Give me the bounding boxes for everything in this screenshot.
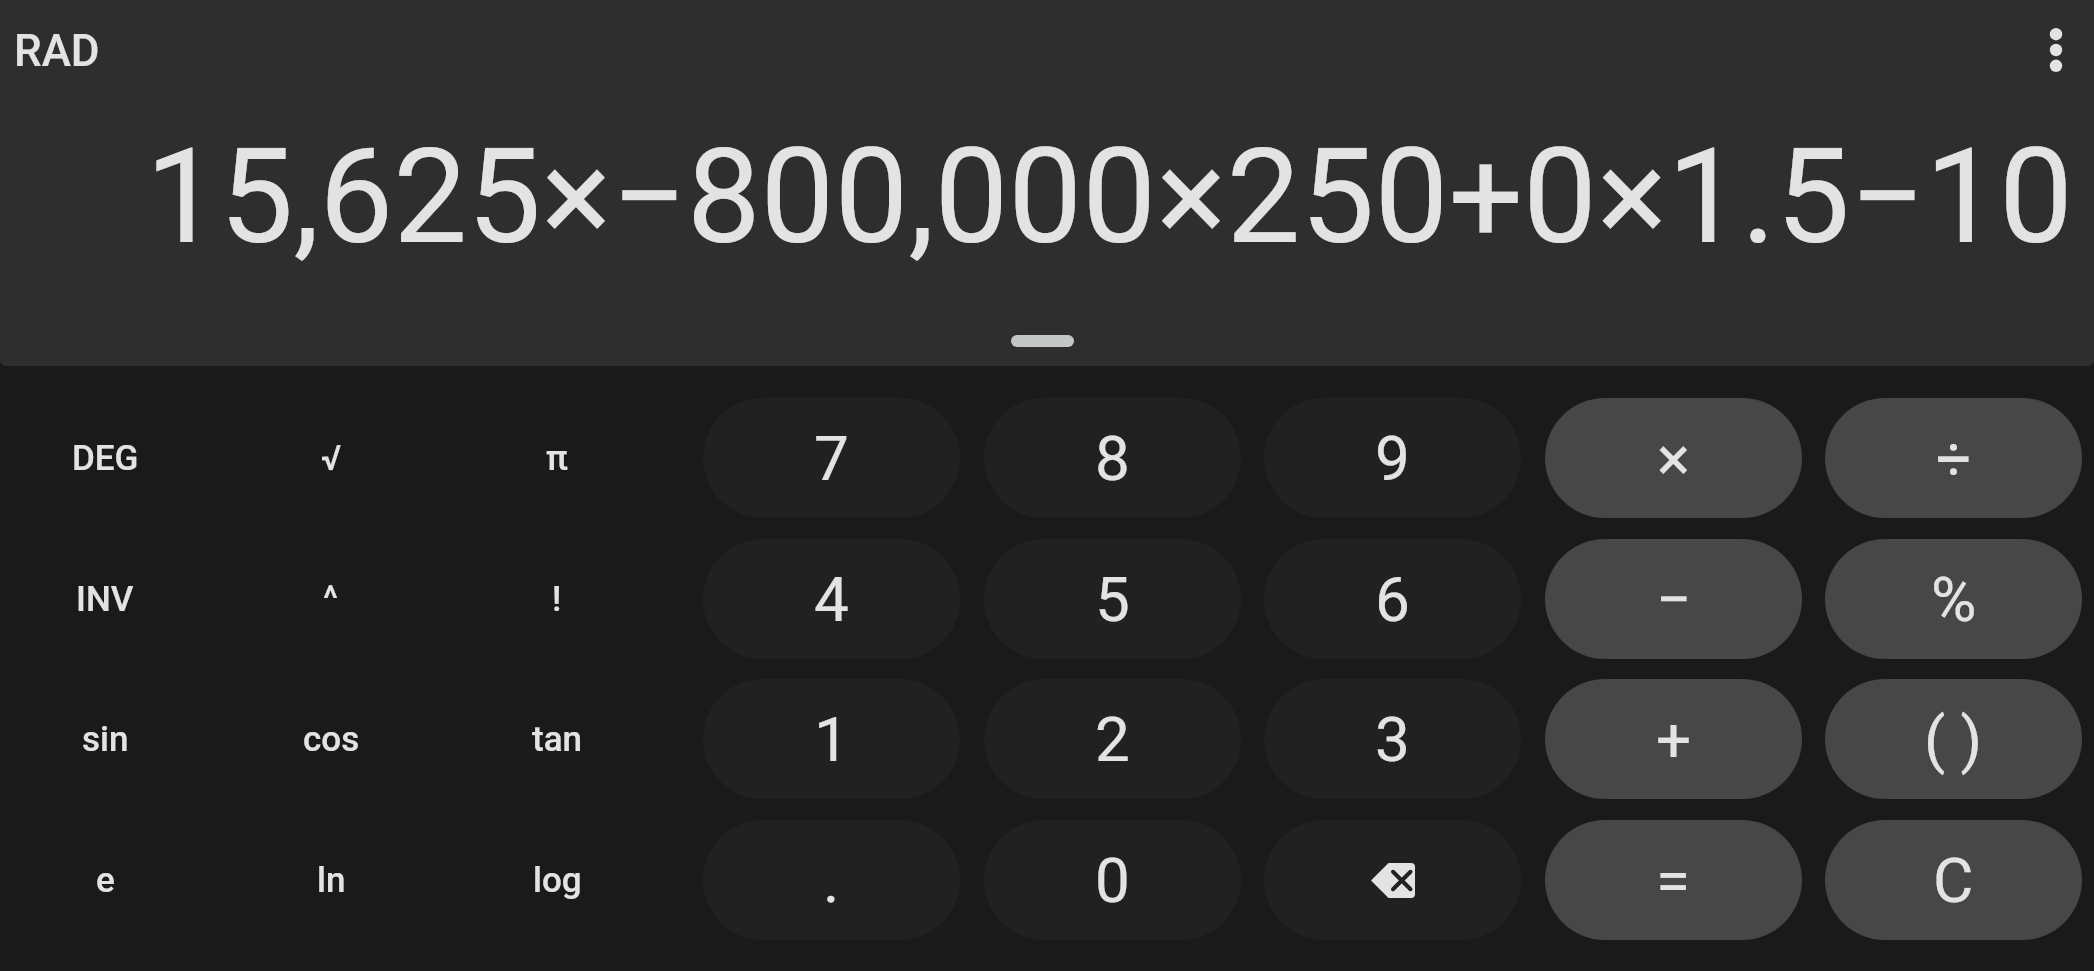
button[interactable]: 9	[1264, 398, 1521, 518]
staticText: 1	[814, 703, 849, 776]
staticText: =	[1656, 844, 1691, 917]
staticText: ÷	[1936, 422, 1972, 495]
button[interactable]: DEG	[0, 398, 210, 518]
button[interactable]: 1	[703, 679, 960, 799]
staticText: ^	[323, 579, 339, 620]
staticText: 7	[814, 422, 849, 495]
staticText: +	[1656, 703, 1692, 776]
staticText: 0	[1095, 844, 1130, 917]
button[interactable]: C	[1825, 820, 2082, 940]
staticText: π	[546, 438, 568, 479]
staticText: 9	[1375, 422, 1410, 495]
button[interactable]: sin	[0, 679, 210, 799]
staticText: 3	[1375, 703, 1410, 776]
button[interactable]: ×	[1545, 398, 1802, 518]
button[interactable]: √	[226, 398, 436, 518]
staticText: INV	[76, 579, 134, 620]
staticText: 8	[1095, 422, 1130, 495]
staticText: ×	[1657, 422, 1691, 495]
staticText: ln	[317, 860, 346, 901]
staticText: .	[823, 844, 840, 917]
button[interactable]: 5	[984, 539, 1241, 659]
staticText: RAD	[14, 25, 100, 77]
staticText: √	[321, 438, 342, 479]
button[interactable]: 4	[703, 539, 960, 659]
staticText: sin	[82, 719, 129, 760]
button[interactable]: =	[1545, 820, 1802, 940]
staticText: tan	[532, 719, 583, 760]
button[interactable]: e	[0, 820, 210, 940]
button[interactable]: Expand history	[970, 319, 1114, 363]
button[interactable]: INV	[0, 539, 210, 659]
staticText: !	[552, 579, 562, 620]
button[interactable]: 6	[1264, 539, 1521, 659]
staticText: DEG	[72, 438, 139, 479]
button[interactable]: 2	[984, 679, 1241, 799]
button[interactable]: 8	[984, 398, 1241, 518]
button[interactable]: ( )	[1825, 679, 2082, 799]
button[interactable]: π	[452, 398, 662, 518]
button[interactable]: .	[703, 820, 960, 940]
staticText: e	[96, 860, 115, 901]
button[interactable]: %	[1825, 539, 2082, 659]
staticText: 6	[1375, 563, 1410, 636]
staticText: ( )	[1924, 703, 1983, 776]
staticText: 4	[814, 563, 849, 636]
button[interactable]: !	[452, 539, 662, 659]
button[interactable]: ÷	[1825, 398, 2082, 518]
staticText: %	[1931, 563, 1977, 636]
staticText: −	[1656, 563, 1692, 636]
button[interactable]: 0	[984, 820, 1241, 940]
button[interactable]: 7	[703, 398, 960, 518]
button[interactable]: cos	[226, 679, 436, 799]
staticText: log	[533, 860, 582, 901]
button[interactable]: 3	[1264, 679, 1521, 799]
button[interactable]: ln	[226, 820, 436, 940]
staticText: 2	[1095, 703, 1130, 776]
button[interactable]: tan	[452, 679, 662, 799]
button[interactable]: +	[1545, 679, 1802, 799]
staticText: C	[1933, 844, 1974, 917]
button[interactable]: More options	[2008, 2, 2094, 98]
button[interactable]: log	[452, 820, 662, 940]
staticText: 5	[1095, 563, 1130, 636]
button[interactable]: ^	[226, 539, 436, 659]
staticText: cos	[303, 719, 360, 760]
button[interactable]: RAD	[0, 14, 120, 88]
button[interactable]: Backspace	[1264, 820, 1521, 940]
staticText: 15,625×−800,000×250+0×1.5−10	[24, 120, 2073, 274]
button[interactable]: −	[1545, 539, 1802, 659]
